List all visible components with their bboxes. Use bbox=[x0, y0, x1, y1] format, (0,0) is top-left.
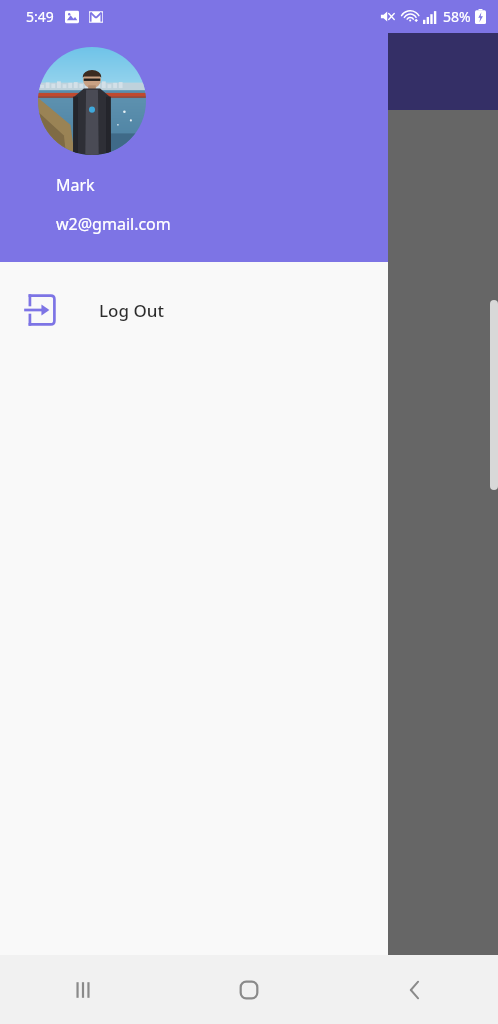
staticText: Log Out bbox=[99, 299, 164, 322]
staticText: Mark bbox=[56, 174, 95, 196]
staticText: 5:49 bbox=[26, 7, 54, 26]
button[interactable]: Home bbox=[166, 955, 332, 1024]
button[interactable]: Recent apps bbox=[0, 955, 166, 1024]
other: Log Out bbox=[22, 292, 58, 328]
staticText: 58% bbox=[443, 7, 471, 26]
staticText: w2@gmail.com bbox=[56, 213, 171, 235]
button[interactable]: Back bbox=[332, 955, 498, 1024]
button[interactable]: Log Out bbox=[0, 262, 388, 358]
